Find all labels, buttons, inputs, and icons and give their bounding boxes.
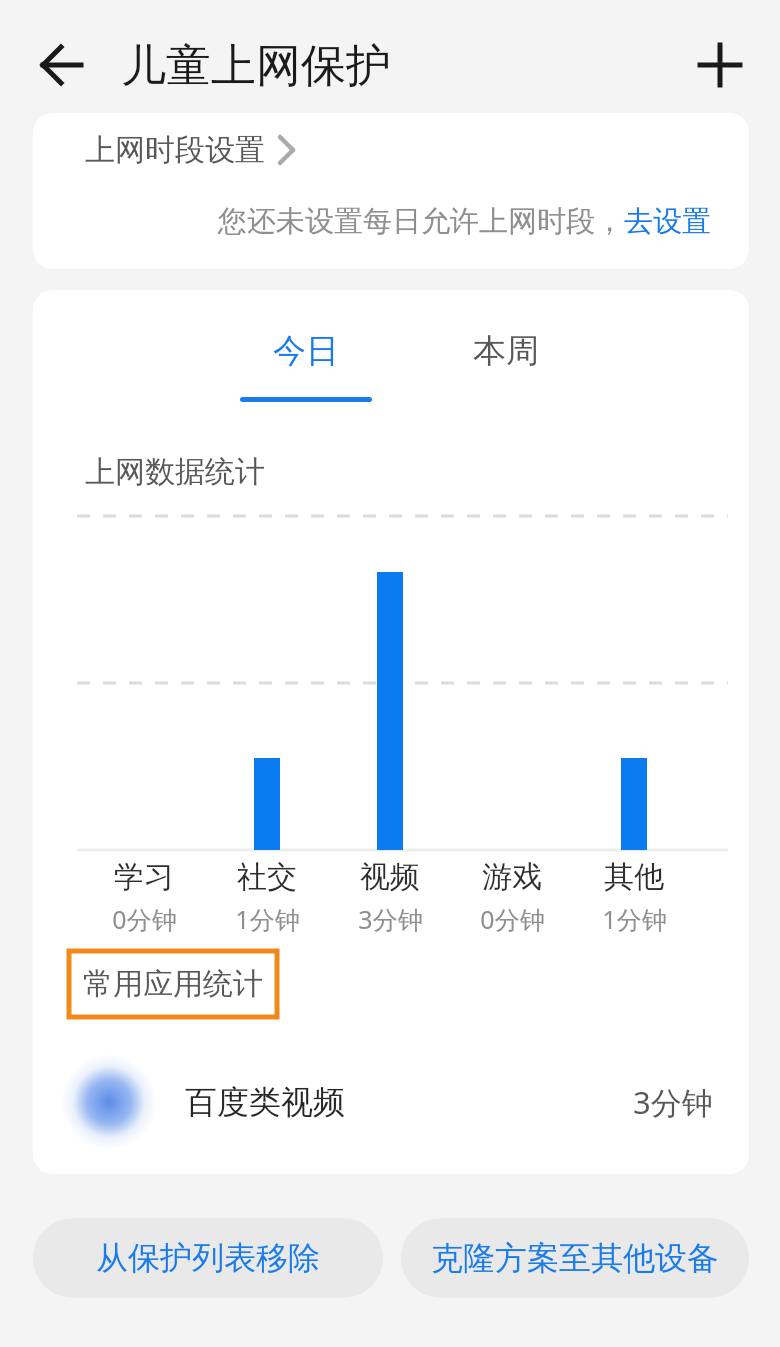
button[interactable]: 今日 bbox=[240, 330, 372, 402]
staticText: 游戏 bbox=[482, 858, 542, 896]
staticText: 本周 bbox=[473, 330, 539, 372]
button[interactable]: 本周 bbox=[440, 330, 572, 402]
button[interactable]: 常用应用统计 bbox=[69, 951, 277, 1017]
button[interactable]: Back bbox=[22, 25, 102, 105]
staticText: 视频 bbox=[360, 858, 420, 896]
staticText: 1分钟 bbox=[235, 902, 300, 936]
staticText: 学习 bbox=[114, 858, 174, 896]
staticText: 其他 bbox=[604, 858, 664, 896]
button[interactable]: Add bbox=[680, 25, 760, 105]
staticText: 儿童上网保护 bbox=[121, 38, 391, 95]
button[interactable]: 上网时段设置 bbox=[33, 113, 749, 187]
staticText: 从保护列表移除 bbox=[96, 1238, 320, 1278]
staticText: 0分钟 bbox=[112, 902, 177, 936]
staticText: 克隆方案至其他设备 bbox=[431, 1238, 719, 1278]
staticText: 上网数据统计 bbox=[85, 453, 265, 491]
staticText: 去设置 bbox=[624, 203, 711, 240]
staticText: 社交 bbox=[237, 858, 297, 896]
staticText: 常用应用统计 bbox=[83, 965, 263, 1003]
staticText: 3分钟 bbox=[358, 902, 423, 936]
button[interactable]: 从保护列表移除 bbox=[33, 1218, 383, 1298]
button[interactable]: 克隆方案至其他设备 bbox=[401, 1218, 749, 1298]
staticText: 上网时段设置 bbox=[85, 131, 265, 169]
staticText: 3分钟 bbox=[633, 1081, 713, 1123]
staticText: 1分钟 bbox=[602, 902, 667, 936]
staticText: 0分钟 bbox=[480, 902, 545, 936]
staticText: 百度类视频 bbox=[185, 1082, 345, 1122]
staticText: 您还未设置每日允许上网时段， bbox=[218, 203, 624, 240]
button[interactable]: 去设置 bbox=[624, 203, 711, 240]
staticText: 今日 bbox=[273, 330, 339, 372]
button[interactable]: 百度类视频 bbox=[33, 1047, 749, 1157]
